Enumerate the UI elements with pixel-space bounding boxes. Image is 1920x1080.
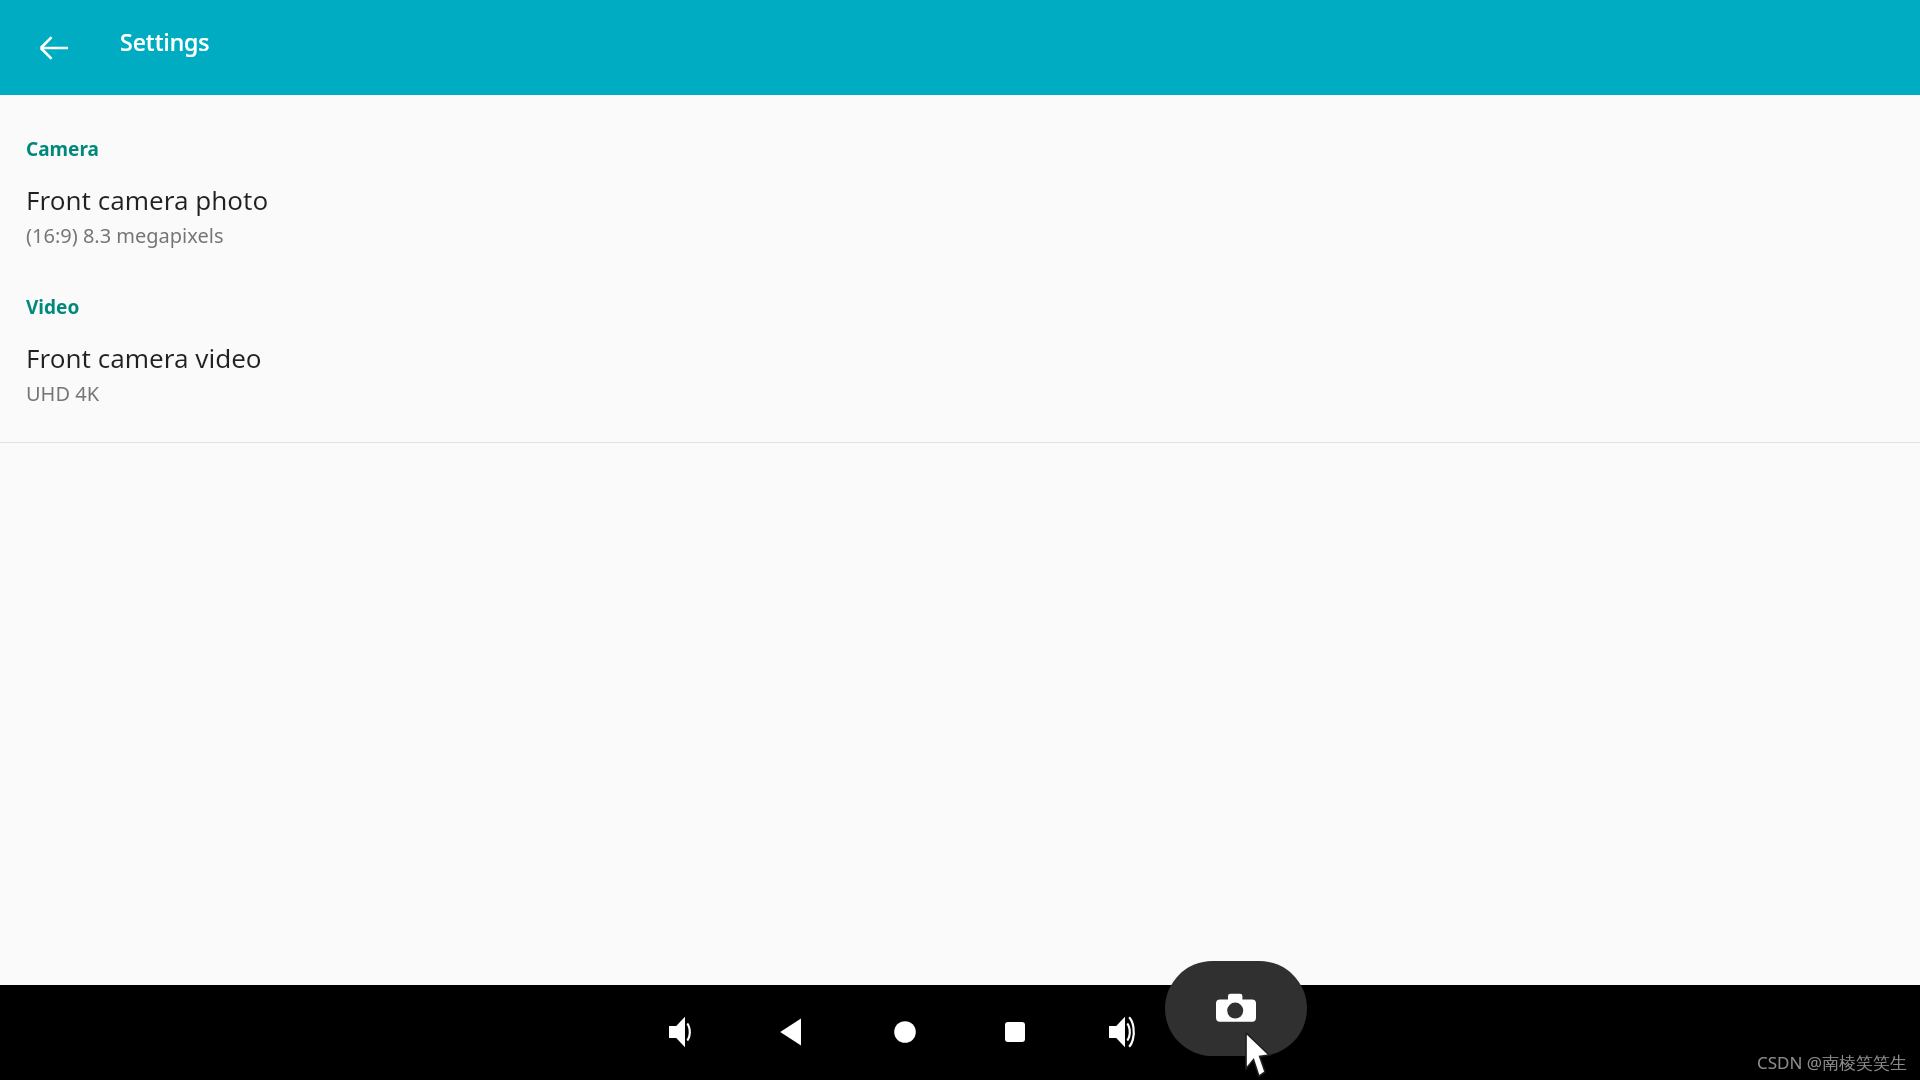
staticText: Front camera video (26, 340, 262, 375)
button[interactable]: Volume up (1095, 1002, 1155, 1062)
button[interactable]: Screenshot (1165, 961, 1307, 1056)
staticText: CSDN @南棱笑笑生 (1757, 1051, 1908, 1074)
staticText: Front camera photo (26, 182, 269, 217)
button[interactable]: Home (875, 1002, 935, 1062)
staticText: UHD 4K (26, 380, 100, 407)
staticText: Video (26, 294, 80, 320)
staticText: Camera (26, 136, 99, 162)
staticText: (16:9) 8.3 megapixels (26, 222, 224, 249)
button[interactable]: Front camera video (0, 338, 1920, 411)
button[interactable]: Back (763, 1002, 823, 1062)
button[interactable]: Back (26, 20, 82, 76)
button[interactable]: Volume down (655, 1002, 715, 1062)
button[interactable]: Recent apps (985, 1002, 1045, 1062)
button[interactable]: Front camera photo (0, 180, 1920, 253)
staticText: Settings (120, 26, 210, 57)
